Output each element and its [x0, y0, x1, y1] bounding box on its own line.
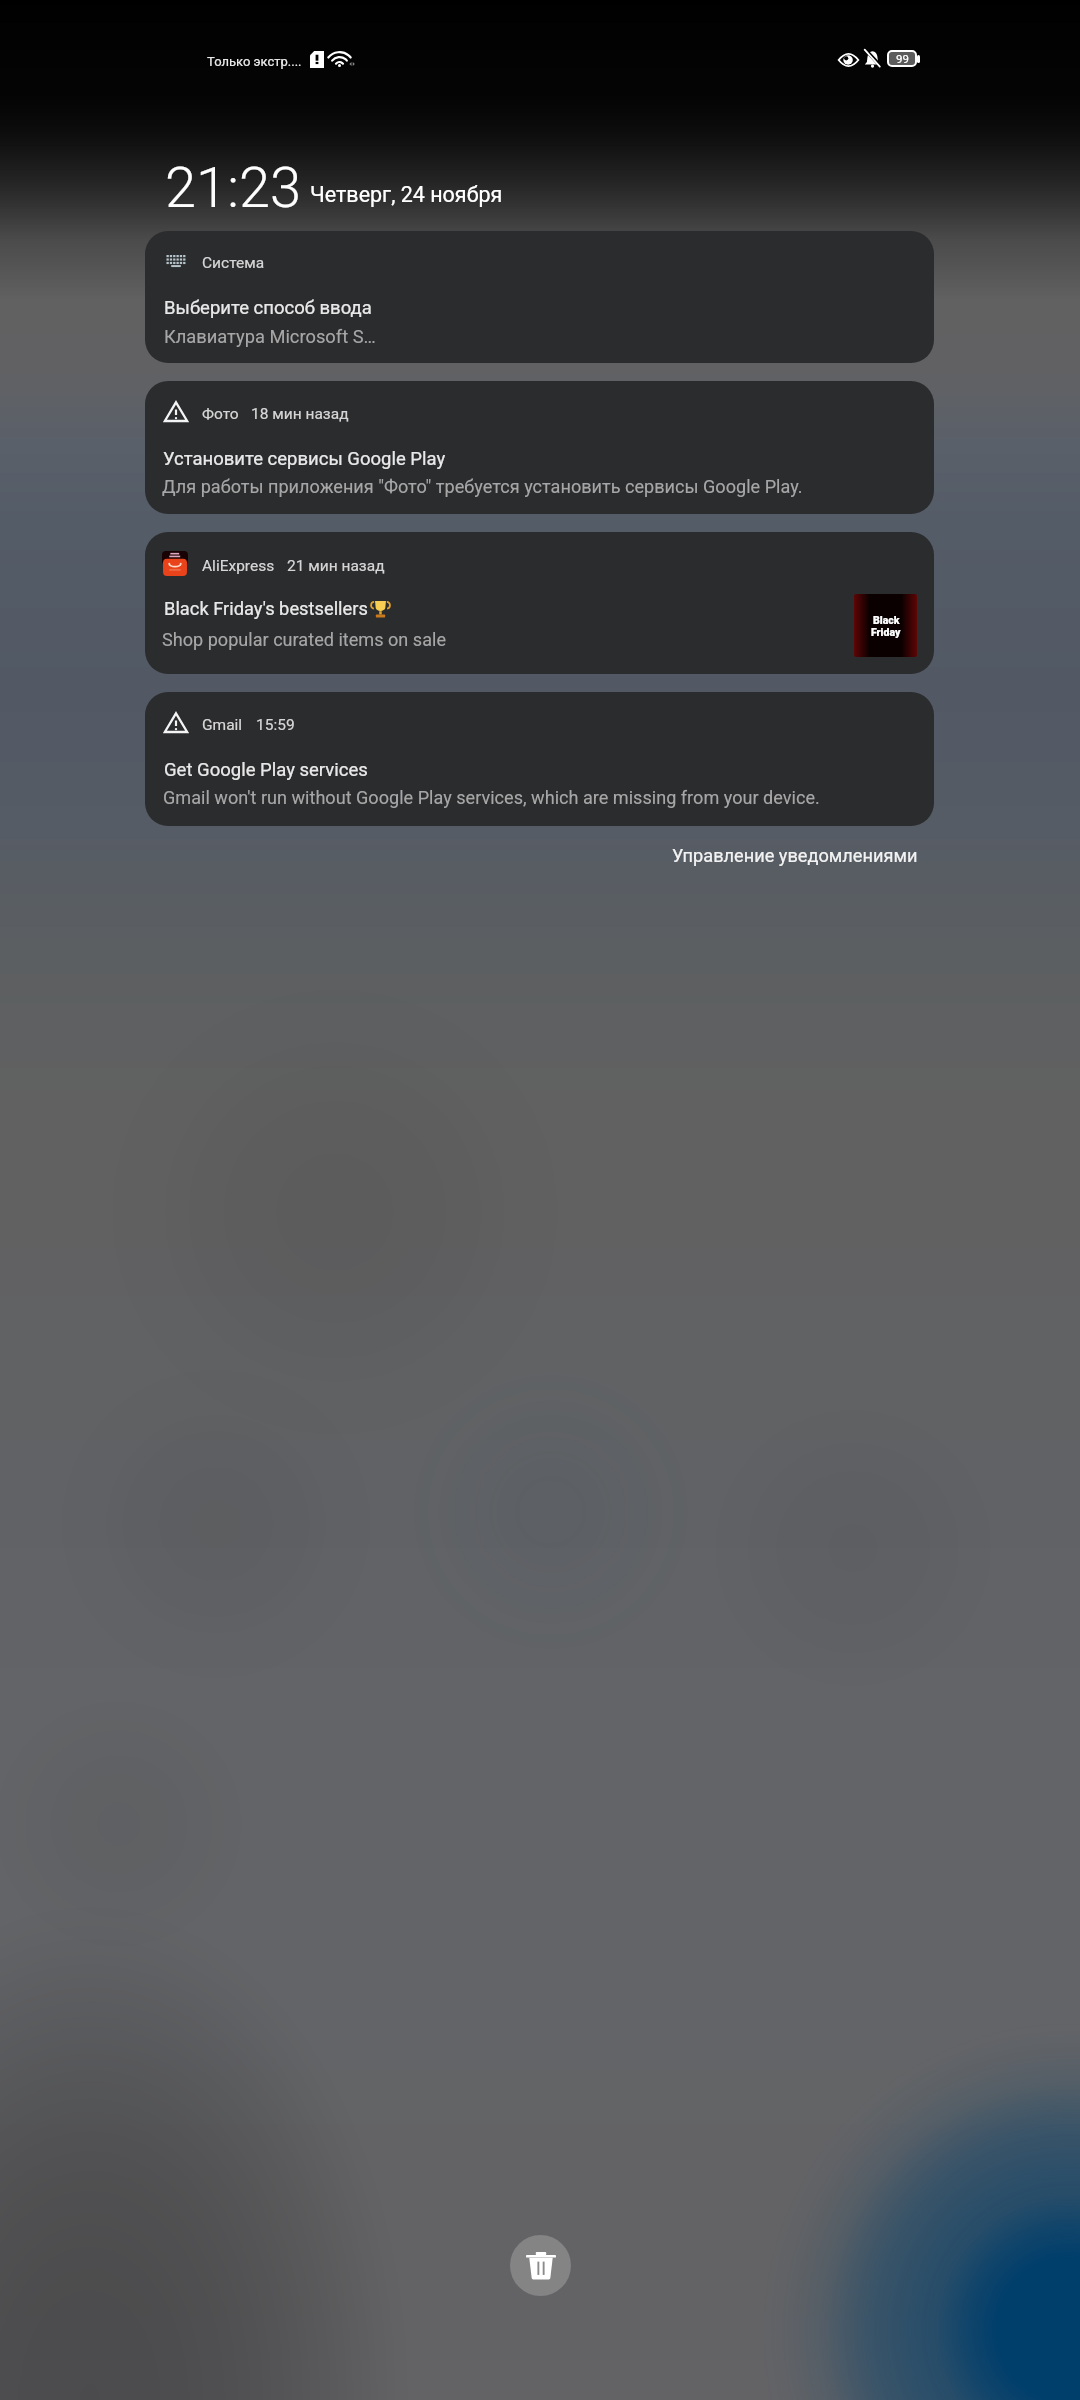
staticText: Friday [871, 626, 901, 638]
staticText: Система [202, 254, 265, 272]
staticText: Четверг, 24 ноября [310, 182, 503, 207]
staticText: Установите сервисы Google Play [163, 448, 446, 470]
staticText: Только экстр.... [207, 54, 302, 69]
staticText: AliExpress [202, 557, 275, 575]
staticText: Для работы приложения "Фото" требуется у… [162, 476, 803, 497]
button[interactable]: Gmail: Get Google Play services [145, 692, 934, 826]
staticText: Black Friday's bestsellers [164, 598, 368, 619]
staticText: Клавиатура Microsoft S… [164, 326, 376, 347]
staticText: 15:59 [256, 716, 295, 734]
staticText: Get Google Play services [164, 759, 368, 781]
staticText: Выберите способ ввода [164, 297, 372, 319]
button[interactable]: Управление уведомлениями [660, 838, 930, 873]
button[interactable]: Фото: Установите сервисы Google Play [145, 381, 934, 514]
staticText: Gmail [202, 716, 243, 734]
staticText: Управление уведомлениями [672, 845, 918, 866]
button[interactable]: Система: Выберите способ ввода [145, 231, 934, 363]
staticText: 21 мин назад [287, 557, 385, 575]
staticText: Black [873, 614, 900, 626]
button[interactable]: AliExpress: Black Friday's bestsellers [145, 532, 934, 674]
staticText: 18 мин назад [251, 405, 349, 423]
button[interactable]: Clear all notifications [510, 2235, 571, 2296]
staticText: Shop popular curated items on sale [162, 629, 447, 650]
staticText: 21:23 [165, 155, 302, 221]
staticText: 99 [896, 52, 909, 65]
staticText: Gmail won't run without Google Play serv… [163, 787, 820, 808]
staticText: Фото [202, 405, 239, 423]
